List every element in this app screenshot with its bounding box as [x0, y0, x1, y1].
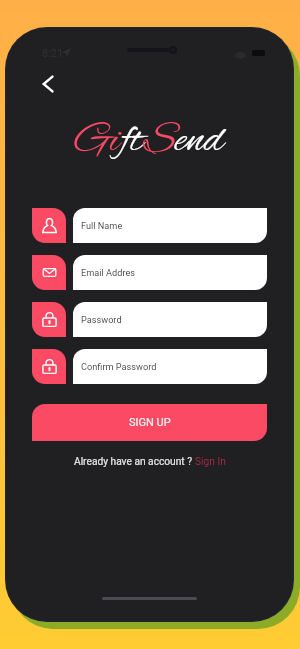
staticText: Sign In — [195, 456, 226, 468]
button[interactable]: Email Addres — [73, 255, 267, 290]
button[interactable]: Full Name — [73, 208, 267, 243]
button[interactable]: Confirm Password — [73, 349, 267, 384]
staticText: 8:21 — [42, 47, 64, 60]
staticText: GiftSend — [75, 115, 225, 169]
button[interactable]: Email Addres — [32, 255, 66, 290]
button[interactable]: Password — [32, 302, 66, 337]
staticText: Already have an account ? — [74, 456, 195, 468]
staticText: Email Addres — [81, 267, 136, 278]
staticText: Confirm Password — [81, 361, 157, 372]
staticText: Full Name — [81, 220, 123, 231]
staticText: Password — [81, 314, 122, 325]
button[interactable]: Confirm Password — [32, 349, 66, 384]
button[interactable]: SIGN UP — [32, 404, 267, 441]
button[interactable]: Back — [32, 68, 64, 100]
button[interactable]: Password — [73, 302, 267, 337]
staticText: SIGN UP — [129, 416, 171, 429]
button[interactable]: Sign In — [195, 456, 226, 468]
button[interactable]: Full Name — [32, 208, 66, 243]
